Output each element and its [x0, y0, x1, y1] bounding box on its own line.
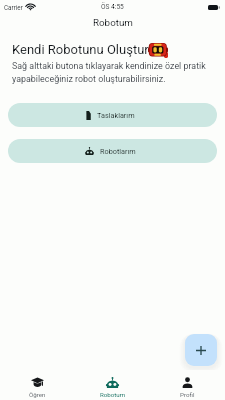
staticText: Öğren	[29, 391, 46, 398]
button[interactable]: Robotum	[75, 370, 150, 400]
staticText: Taslaklarım	[97, 111, 135, 120]
staticText: Sağ alttaki butona tıklayarak kendinize …	[12, 61, 210, 84]
staticText: Robotum	[93, 17, 133, 28]
button[interactable]: Taslaklarım	[8, 103, 217, 127]
staticText: ÖS 4:55	[101, 3, 124, 11]
staticText: Robotum	[100, 391, 126, 398]
button[interactable]: Robotlarım	[8, 139, 217, 163]
button[interactable]: Öğren	[0, 370, 75, 400]
staticText: Profil	[180, 391, 195, 398]
staticText: Robotlarım	[100, 147, 136, 156]
staticText: Kendi Robotunu Oluştur	[12, 42, 149, 57]
button[interactable]: Yeni robot oluştur	[185, 334, 217, 366]
button[interactable]: Profil	[150, 370, 225, 400]
staticText: Carrier	[4, 4, 23, 11]
